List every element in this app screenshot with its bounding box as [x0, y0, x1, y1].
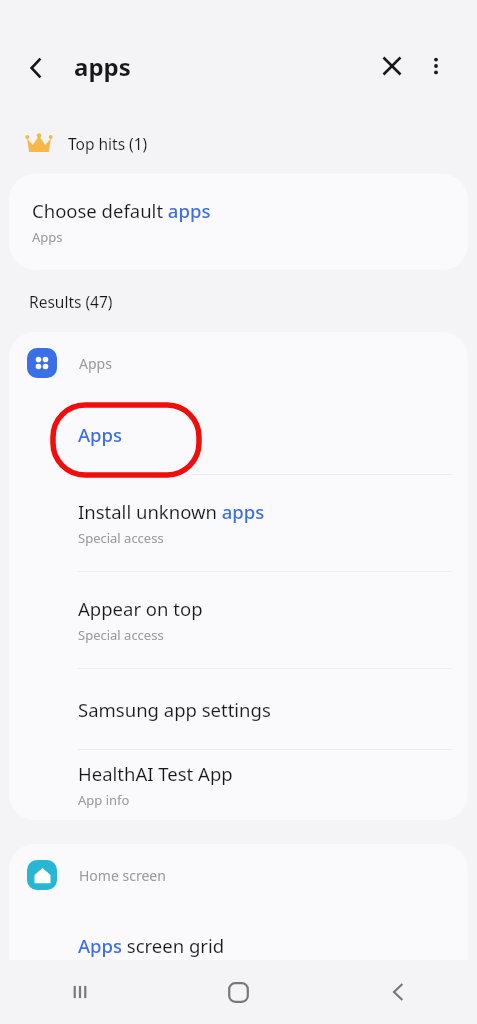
staticText: Apps	[78, 422, 123, 447]
staticText: Appear on top	[78, 596, 203, 621]
staticText: Apps	[32, 228, 63, 246]
button[interactable]: Back	[12, 44, 60, 92]
staticText: Home screen	[79, 866, 166, 885]
staticText: App info	[78, 791, 130, 809]
staticText: Install unknown apps	[78, 499, 265, 524]
button[interactable]: More options	[412, 42, 460, 90]
staticText: Samsung app settings	[78, 697, 271, 722]
button[interactable]: HealthAI Test App	[9, 750, 468, 820]
button[interactable]: Clear search	[368, 42, 416, 90]
button[interactable]: Apps	[9, 394, 468, 474]
staticText: Special access	[78, 626, 164, 644]
button[interactable]: Appear on top	[9, 572, 468, 668]
button[interactable]: Apps screen grid	[9, 906, 468, 984]
staticText: HealthAI Test App	[78, 761, 233, 786]
button[interactable]: Home	[159, 960, 318, 1024]
staticText: apps	[74, 50, 131, 83]
staticText: Apps screen grid	[78, 933, 225, 958]
button[interactable]: Recent apps	[0, 960, 159, 1024]
staticText: Results (47)	[29, 291, 113, 312]
button[interactable]: Back	[318, 960, 477, 1024]
staticText: Top hits (1)	[68, 133, 148, 154]
button[interactable]: Samsung app settings	[9, 669, 468, 749]
staticText: Special access	[78, 529, 164, 547]
staticText: Choose default apps	[32, 198, 211, 223]
button[interactable]: Install unknown apps	[9, 475, 468, 571]
staticText: Apps	[79, 354, 112, 373]
button[interactable]: Choose default apps	[9, 174, 468, 270]
